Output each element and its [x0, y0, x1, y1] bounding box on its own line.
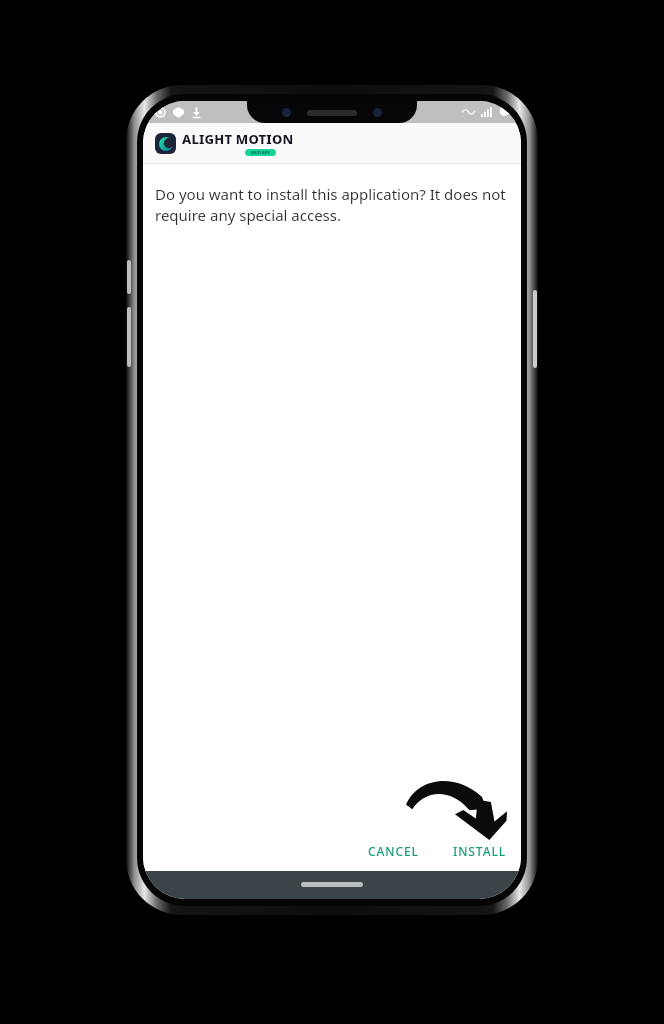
staticText: MOD APK [251, 150, 270, 155]
button[interactable]: CANCEL [356, 835, 431, 867]
button[interactable]: INSTALL [441, 835, 519, 867]
staticText: CANCEL [368, 843, 419, 859]
other: Home [301, 882, 363, 887]
staticText: INSTALL [453, 843, 507, 859]
staticText: ALIGHT MOTION [182, 130, 294, 148]
staticText: Do you want to install this application?… [155, 184, 507, 226]
